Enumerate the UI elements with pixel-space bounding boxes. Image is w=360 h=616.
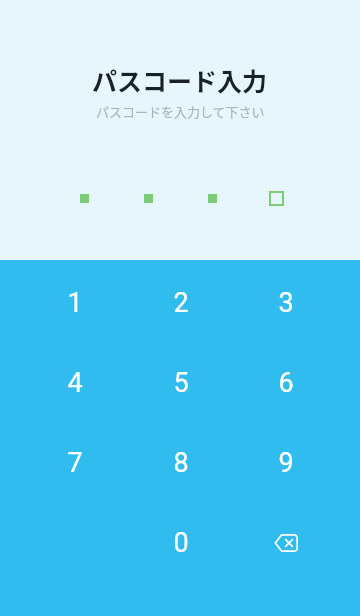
button[interactable]: 1	[22, 263, 128, 343]
staticText: 7	[67, 447, 83, 479]
button[interactable]: 9	[233, 423, 338, 503]
staticText: パスコード入力	[92, 62, 268, 98]
button[interactable]: 8	[128, 423, 233, 503]
button[interactable]: 2	[128, 263, 233, 343]
staticText: 1	[67, 287, 83, 319]
staticText: 8	[173, 447, 189, 479]
button[interactable]: 3	[233, 263, 338, 343]
button[interactable]: 6	[233, 343, 338, 423]
button[interactable]: Delete last digit	[233, 503, 338, 583]
staticText: 9	[278, 447, 294, 479]
button[interactable]: 7	[22, 423, 128, 503]
staticText: パスコードを入力して下さい	[96, 102, 265, 121]
staticText: 3	[278, 287, 294, 319]
staticText: 6	[278, 367, 294, 399]
button[interactable]: 5	[128, 343, 233, 423]
staticText: 2	[173, 287, 189, 319]
button[interactable]: 0	[128, 503, 233, 583]
button[interactable]: 4	[22, 343, 128, 423]
staticText: 0	[173, 527, 189, 559]
staticText: 5	[173, 367, 189, 399]
staticText: 4	[67, 367, 83, 399]
